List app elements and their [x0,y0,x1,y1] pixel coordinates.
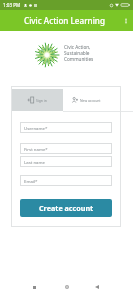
button[interactable]: Recents [25,278,43,296]
button[interactable]: More options [119,10,133,31]
button[interactable]: Sign in [11,89,63,111]
staticText: Civic Action, [64,44,91,50]
staticText: Email* [24,178,38,184]
button[interactable]: Home [58,278,76,296]
staticText: Sustainable [64,50,90,56]
staticText: Sign in [36,98,47,103]
button[interactable]: First name* [20,143,112,154]
staticText: 1:03 PM [3,2,21,8]
staticText: Communities [64,56,94,62]
staticText: First name* [24,146,48,152]
staticText: Create account [39,203,94,213]
staticText: Last name [24,159,45,165]
staticText: Username* [24,125,48,131]
button[interactable]: Last name [20,156,112,167]
button[interactable]: Email* [20,175,112,186]
button[interactable]: Username* [20,122,112,133]
button[interactable]: New account [63,89,120,111]
staticText: Civic Action Learning [24,15,105,26]
button[interactable]: Back [88,278,106,296]
button[interactable]: Create account [20,199,112,217]
staticText: New account [80,98,101,103]
